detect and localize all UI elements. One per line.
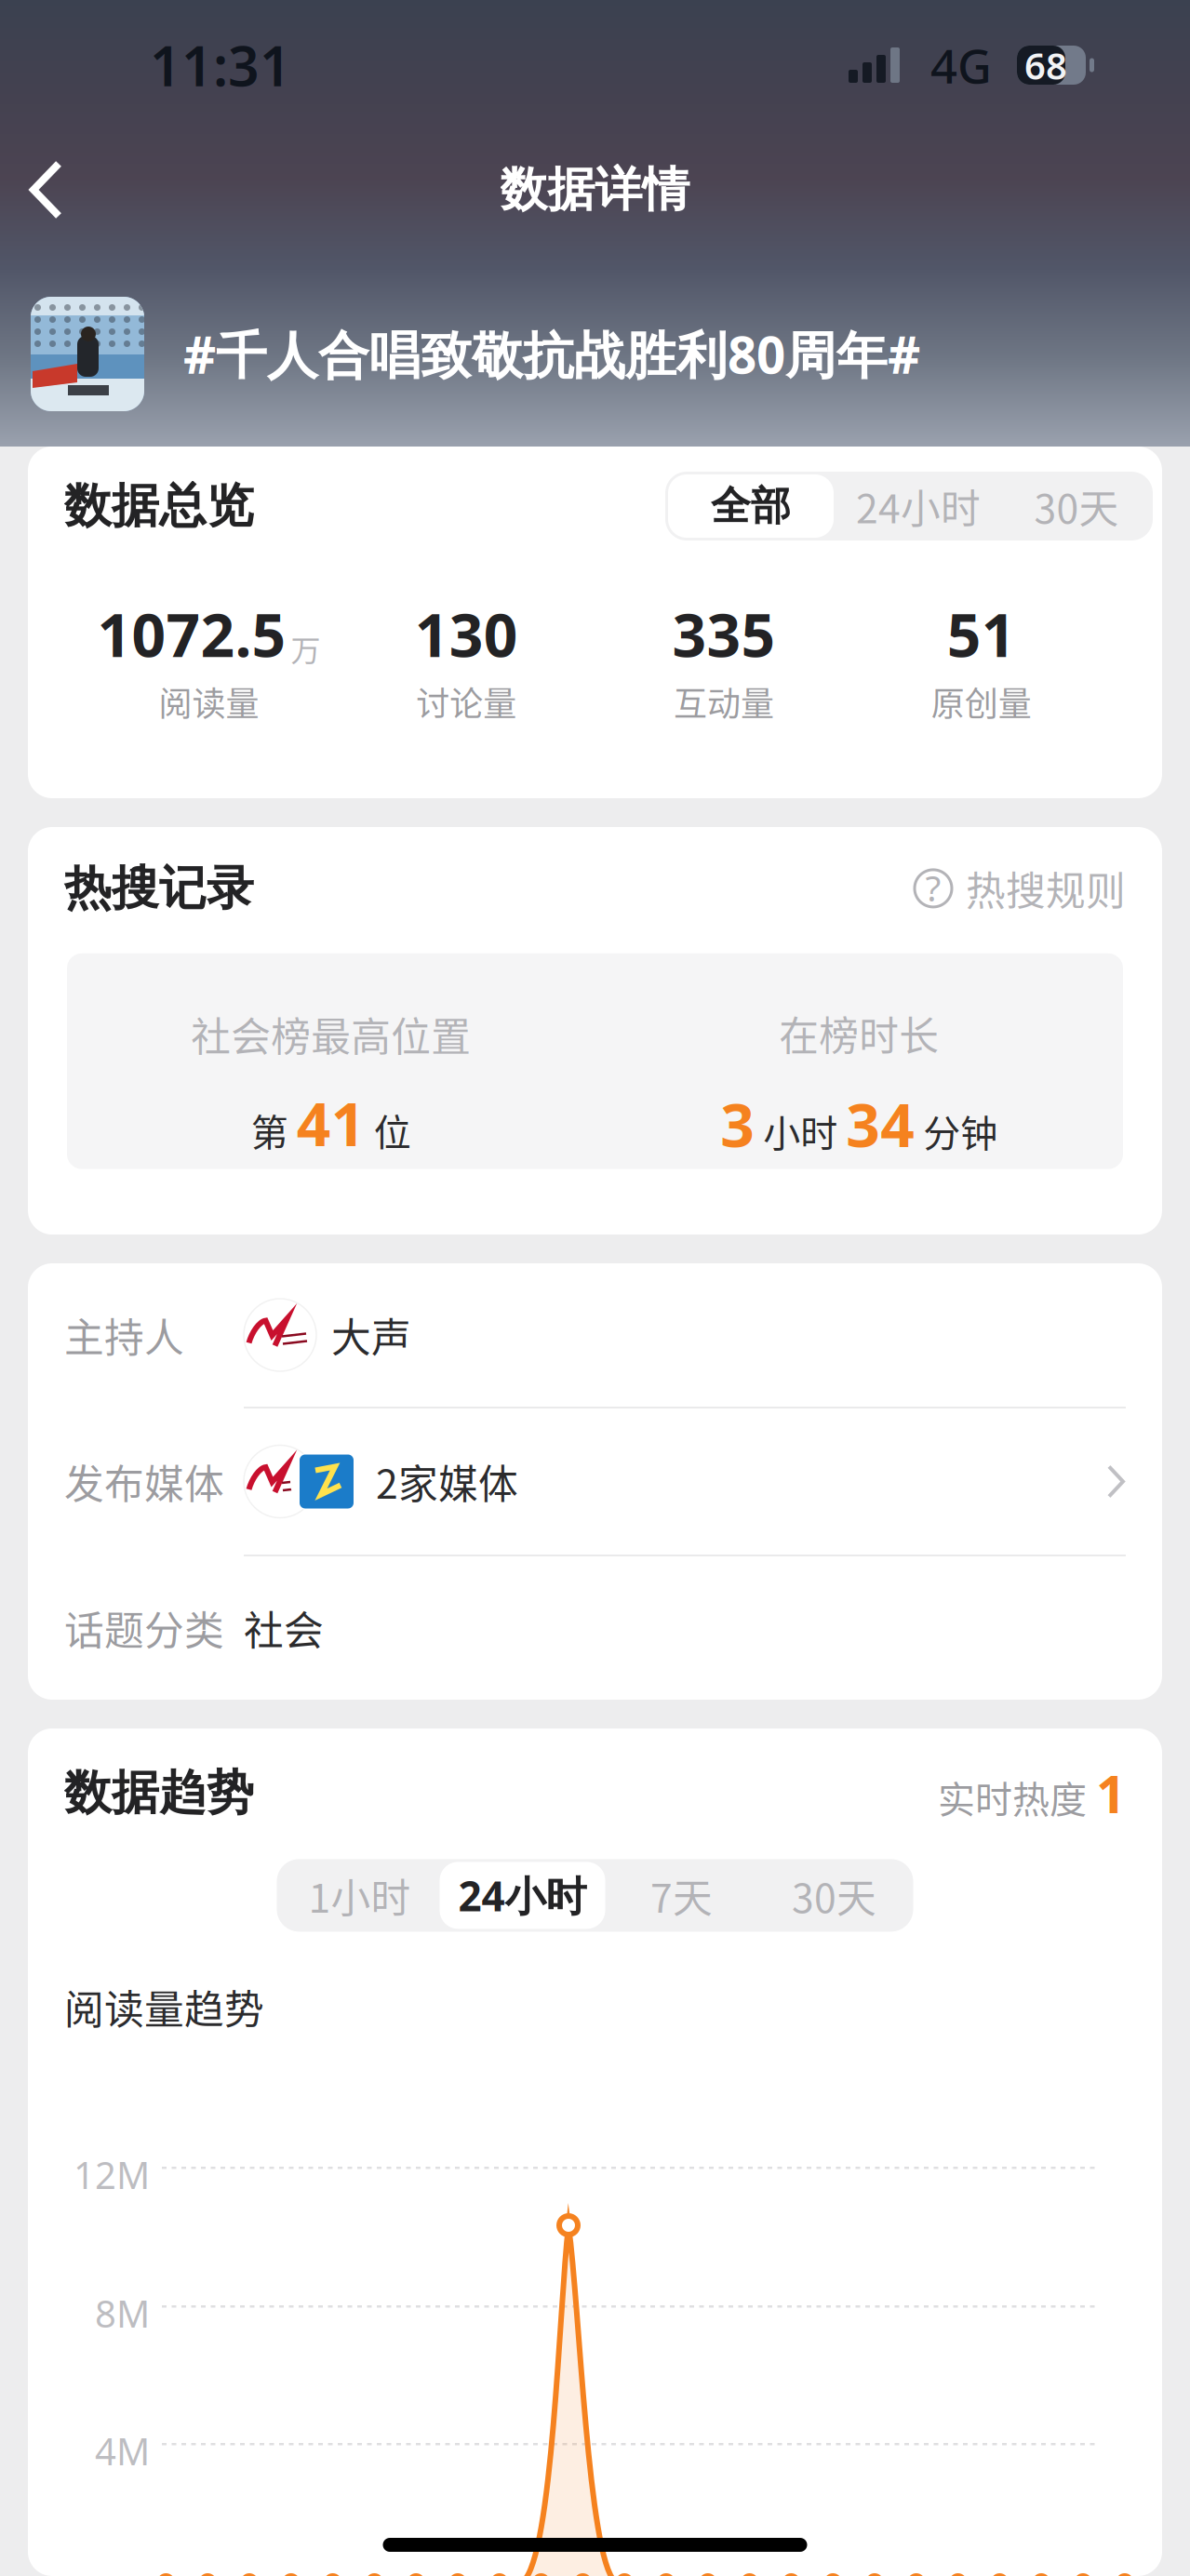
staticText: 全部 [711,481,791,531]
staticText: 万 [291,627,320,670]
button[interactable]: 7天 [605,1862,758,1929]
button[interactable]: 发布媒体 [28,1408,1162,1555]
staticText: 11:31 [150,29,291,101]
staticText: 41 [297,1083,365,1163]
staticText: 51 [947,594,1016,674]
staticText: 话题分类 [64,1599,224,1657]
button[interactable]: 30天 [758,1862,910,1929]
staticText: 30天 [1034,477,1119,535]
staticText: 主持人 [64,1306,184,1364]
button[interactable]: 24小时 [440,1862,605,1929]
staticText: 大声 [331,1306,411,1364]
staticText: 阅读量 [159,677,259,726]
staticText: 分钟 [923,1104,998,1158]
staticText: 24小时 [458,1867,587,1923]
staticText: 互动量 [674,677,774,726]
staticText: 8M [95,2289,150,2338]
button[interactable]: 1小时 [280,1862,440,1929]
staticText: 12M [74,2150,150,2199]
staticText: 30天 [792,1867,876,1924]
staticText: 1 [1096,1758,1126,1827]
staticText: 数据详情 [500,160,690,219]
staticText: 130 [415,594,518,674]
button[interactable]: 24小时 [834,474,1003,538]
staticText: 数据总览 [64,476,254,536]
staticText: 在榜时长 [779,1005,939,1062]
button[interactable]: Back [0,137,96,243]
staticText: 位 [374,1103,411,1157]
staticText: 335 [672,594,775,674]
staticText: 7天 [650,1867,713,1924]
staticText: 社会榜最高位置 [191,1005,471,1063]
staticText: 数据趋势 [64,1763,254,1823]
staticText: 3 [720,1084,755,1163]
staticText: ? [925,864,941,911]
staticText: 热搜规则 [966,860,1126,917]
staticText: 热搜记录 [64,859,254,918]
staticText: 第 [251,1103,288,1157]
staticText: 4G [930,34,992,96]
staticText: 34 [846,1084,915,1163]
button[interactable]: ? [914,860,1126,917]
staticText: 68 [1024,40,1067,90]
staticText: 阅读量趋势 [64,1978,264,2036]
staticText: 实时热度 [938,1770,1087,1824]
staticText: 小时 [763,1104,838,1158]
staticText: 2家媒体 [376,1453,518,1510]
staticText: 4M [95,2426,150,2476]
staticText: 24小时 [856,477,981,535]
button[interactable]: 全部 [668,474,834,538]
staticText: #千人合唱致敬抗战胜利80周年# [183,319,920,389]
staticText: 发布媒体 [64,1453,224,1510]
button[interactable]: 30天 [1003,474,1150,538]
staticText: 原创量 [931,677,1031,726]
staticText: 1072.5 [97,594,286,674]
staticText: 1小时 [308,1867,411,1924]
staticText: 社会 [244,1599,324,1657]
staticText: 讨论量 [416,677,516,726]
